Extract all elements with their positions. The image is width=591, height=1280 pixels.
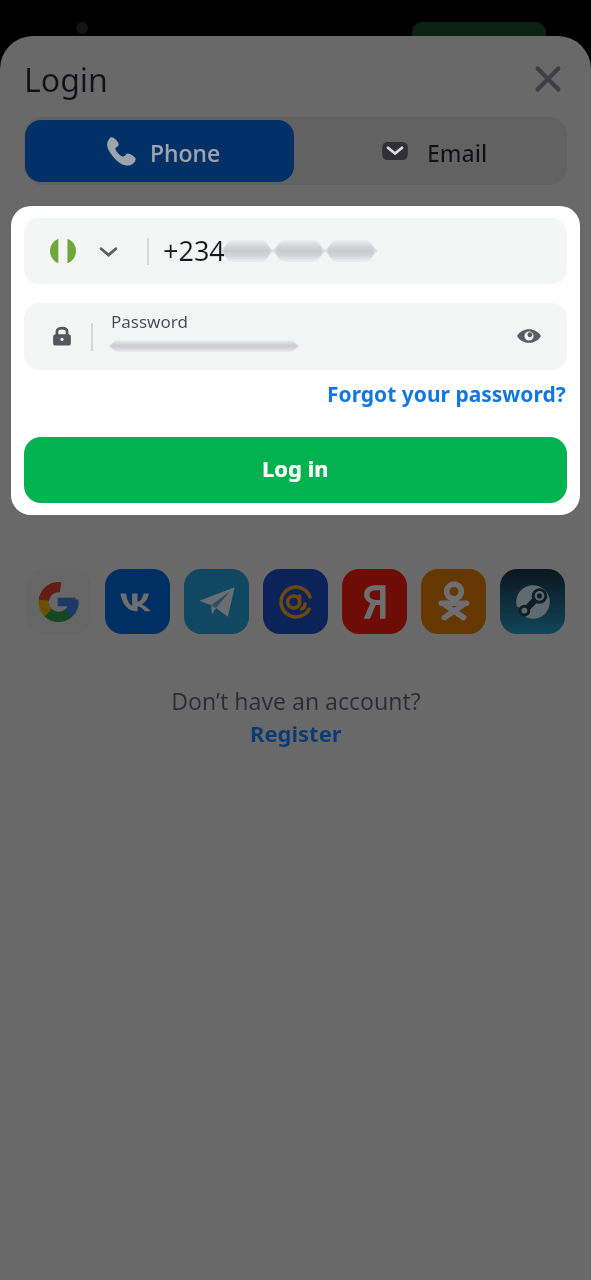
staticText: Register bbox=[250, 718, 342, 748]
button[interactable]: Sign in with Mail.ru bbox=[263, 569, 328, 634]
button[interactable]: Sign in with Yandex bbox=[342, 569, 407, 634]
button[interactable]: Sign in with VK bbox=[105, 569, 170, 634]
button[interactable]: +234 bbox=[24, 218, 567, 284]
button[interactable]: Sign in with Telegram bbox=[184, 569, 249, 634]
staticText: Login bbox=[24, 58, 108, 102]
staticText: Don’t have an account? bbox=[171, 685, 421, 716]
button[interactable]: Register bbox=[220, 716, 371, 750]
staticText: Log in bbox=[262, 453, 329, 483]
staticText: Forgot your password? bbox=[327, 380, 566, 409]
button[interactable]: Close bbox=[530, 61, 566, 97]
staticText: Phone bbox=[150, 137, 221, 168]
button[interactable]: Log in bbox=[24, 437, 567, 503]
staticText: Password bbox=[111, 310, 188, 333]
button[interactable]: Email bbox=[294, 120, 567, 182]
button[interactable]: Sign in with Google bbox=[26, 569, 91, 634]
button[interactable]: Sign in with Odnoklassniki bbox=[421, 569, 486, 634]
button[interactable]: Show password bbox=[503, 310, 555, 362]
button[interactable]: Sign in with Steam bbox=[500, 569, 565, 634]
button[interactable]: Forgot your password? bbox=[264, 374, 580, 414]
staticText: Email bbox=[427, 137, 488, 168]
staticText: +234 bbox=[163, 232, 225, 269]
button[interactable]: Phone bbox=[25, 120, 294, 182]
button[interactable]: Password bbox=[24, 303, 567, 370]
